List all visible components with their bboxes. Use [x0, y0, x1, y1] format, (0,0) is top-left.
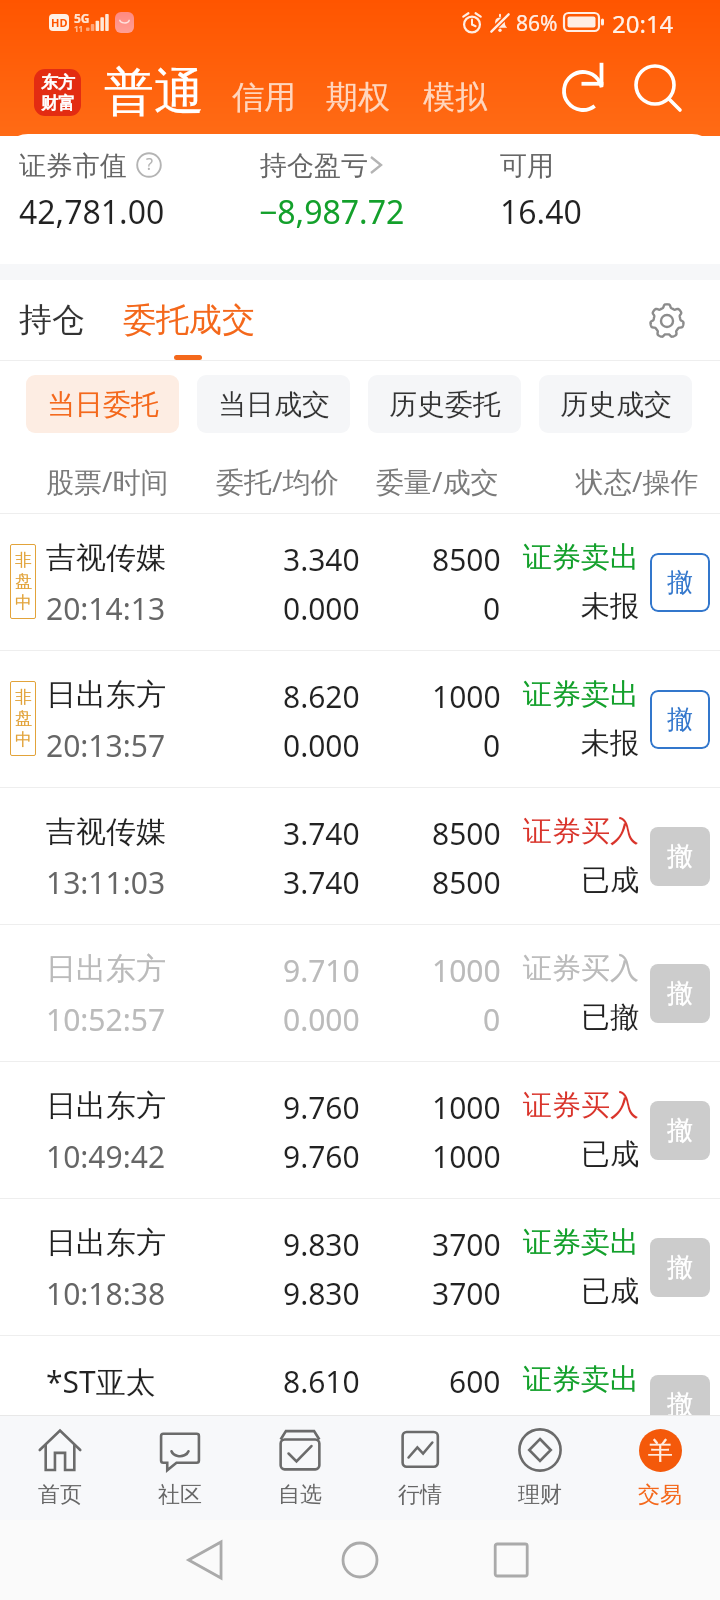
button[interactable]: 羊: [600, 1417, 720, 1520]
button[interactable]: 撤: [650, 1238, 710, 1297]
staticText: 20:13:57: [46, 725, 166, 766]
staticText: 日出东方: [46, 1224, 166, 1262]
staticText: 首页: [38, 1481, 82, 1509]
staticText: 普通: [104, 61, 204, 124]
staticText: 未报: [581, 725, 639, 762]
staticText: 撤: [667, 703, 693, 736]
staticText: 0: [483, 588, 501, 629]
staticText: 交易: [638, 1481, 682, 1509]
staticText: 撤: [667, 977, 693, 1010]
button[interactable]: 日出东方: [0, 1199, 720, 1336]
button[interactable]: Settings: [641, 295, 693, 347]
button[interactable]: 非: [0, 651, 720, 788]
staticText: 中: [15, 592, 32, 613]
staticText: 10:18:38: [46, 1273, 166, 1314]
staticText: HD: [51, 15, 68, 30]
button[interactable]: 日出东方: [0, 1062, 720, 1199]
staticText: 历史委托: [389, 387, 501, 422]
staticText: 20:14:13: [46, 588, 166, 629]
staticText: 日出东方: [46, 950, 166, 988]
button[interactable]: 行情: [360, 1416, 480, 1520]
button[interactable]: Refresh: [555, 63, 611, 119]
staticText: 10:49:42: [46, 1136, 166, 1177]
button[interactable]: *ST亚太: [0, 1336, 720, 1473]
staticText: 可用: [500, 149, 554, 183]
button[interactable]: 吉视传媒: [0, 788, 720, 925]
button[interactable]: 社区: [120, 1416, 240, 1520]
staticText: 已撤: [581, 999, 639, 1036]
button[interactable]: 日出东方: [0, 925, 720, 1062]
staticText: 证券卖出: [523, 676, 639, 713]
staticText: 模拟: [423, 77, 487, 117]
staticText: 盘: [15, 571, 32, 592]
staticText: 撤: [667, 566, 693, 599]
button[interactable]: 历史成交: [539, 375, 692, 433]
staticText: 当日委托: [47, 387, 159, 422]
staticText: 13:11:03: [46, 862, 166, 903]
staticText: 委托/均价: [216, 462, 339, 500]
staticText: 非: [15, 550, 32, 571]
staticText: 未报: [581, 588, 639, 625]
staticText: 委量/成交: [376, 462, 499, 500]
staticText: 1000: [432, 1136, 501, 1177]
staticText: *ST亚太: [46, 1361, 156, 1402]
staticText: 持仓: [19, 299, 85, 341]
button[interactable]: 理财: [480, 1416, 600, 1520]
staticText: 600: [449, 1361, 501, 1402]
button[interactable]: 撤: [650, 553, 710, 612]
button[interactable]: 当日委托: [26, 375, 179, 433]
staticText: 已成: [581, 1136, 639, 1173]
button[interactable]: 撤: [650, 690, 710, 749]
button[interactable]: Help: [136, 152, 162, 178]
staticText: 东方: [41, 72, 75, 93]
staticText: 8.610: [283, 1361, 360, 1402]
button[interactable]: 首页: [0, 1416, 120, 1520]
staticText: 证券卖出: [523, 539, 639, 576]
button[interactable]: 历史委托: [368, 375, 521, 433]
staticText: 3700: [432, 1224, 501, 1265]
button[interactable]: 撤: [650, 1375, 710, 1434]
button[interactable]: 撤: [650, 827, 710, 886]
button[interactable]: 非: [0, 514, 720, 651]
staticText: 证券买入: [523, 1087, 639, 1124]
button[interactable]: 委托成交: [110, 290, 268, 350]
staticText: 1000: [432, 950, 501, 991]
staticText: 8500: [432, 813, 501, 854]
staticText: 已成: [581, 1273, 639, 1310]
staticText: 吉视传媒: [46, 813, 166, 851]
staticText: 盘: [15, 708, 32, 729]
staticText: 吉视传媒: [46, 539, 166, 577]
staticText: 0: [483, 725, 501, 766]
staticText: 证券买入: [523, 950, 639, 987]
staticText: 已成: [581, 862, 639, 899]
button[interactable]: 撤: [650, 964, 710, 1023]
button[interactable]: 撤: [650, 1101, 710, 1160]
button[interactable]: 当日成交: [197, 375, 350, 433]
staticText: 11: [74, 23, 84, 34]
staticText: 9.760: [283, 1087, 360, 1128]
staticText: 撤: [667, 1114, 693, 1147]
staticText: 8.620: [283, 676, 360, 717]
staticText: 证券买入: [523, 813, 639, 850]
staticText: 羊: [648, 1435, 673, 1466]
button[interactable]: 自选: [240, 1416, 360, 1520]
staticText: 9.710: [283, 950, 360, 991]
staticText: 0.000: [283, 725, 360, 766]
button[interactable]: 持仓: [6, 290, 98, 350]
staticText: ?: [146, 153, 153, 175]
staticText: 委托成交: [123, 299, 255, 341]
staticText: 状态/操作: [576, 462, 699, 500]
staticText: 撤: [667, 1388, 693, 1421]
button[interactable]: Search: [630, 60, 686, 116]
staticText: 当日成交: [218, 387, 330, 422]
staticText: 日出东方: [46, 1087, 166, 1125]
staticText: 0.000: [283, 999, 360, 1040]
staticText: 5G: [74, 10, 90, 26]
staticText: 自选: [278, 1481, 322, 1509]
staticText: 10:52:57: [46, 999, 166, 1040]
staticText: 证券卖出: [523, 1361, 639, 1398]
staticText: 信用: [232, 77, 296, 117]
staticText: 撤: [667, 1251, 693, 1284]
staticText: 3.740: [283, 813, 360, 854]
staticText: 证券市值: [19, 149, 127, 183]
